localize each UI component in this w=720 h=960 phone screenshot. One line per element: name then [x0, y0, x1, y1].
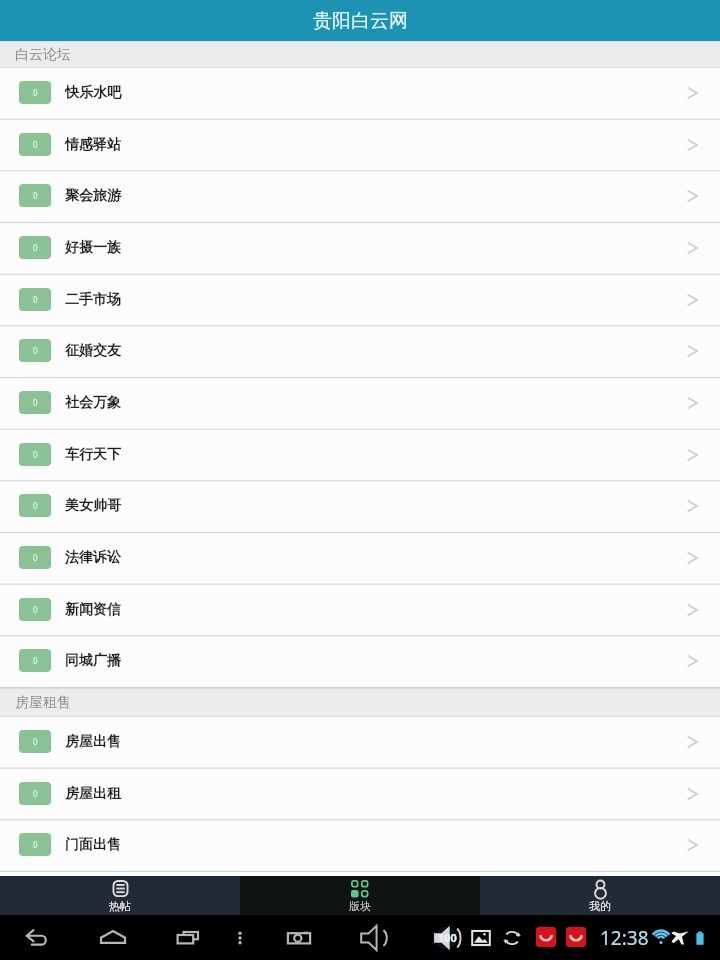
button[interactable]: 0 [0, 769, 720, 821]
other: WiFi [650, 927, 672, 949]
staticText: 0 [33, 839, 38, 850]
button[interactable]: 0 [0, 275, 720, 327]
button[interactable]: 我的 [480, 876, 720, 915]
button[interactable]: 0 [0, 717, 720, 769]
staticText: 新闻资信 [65, 601, 121, 619]
button[interactable]: 0 [0, 585, 720, 637]
button[interactable]: 0 [0, 120, 720, 172]
button[interactable]: 版块 [240, 876, 480, 915]
staticText: 房屋出租 [65, 785, 121, 803]
button[interactable]: 0 [0, 68, 720, 120]
staticText: 0 [33, 655, 38, 666]
button[interactable]: 0 [0, 636, 720, 688]
staticText: 0 [33, 345, 38, 356]
button[interactable]: 0 [0, 820, 720, 872]
other: Airplane mode [670, 928, 690, 948]
staticText: 0 [33, 397, 38, 408]
other: Battery [690, 928, 710, 948]
staticText: 0 [33, 449, 38, 460]
staticText: 0 [33, 139, 38, 150]
staticText: 我的 [589, 899, 611, 913]
staticText: 车行天下 [65, 446, 121, 464]
staticText: 0 [33, 294, 38, 305]
staticText: 美女帅哥 [65, 497, 121, 515]
button[interactable]: 热帖 [0, 876, 240, 915]
other: Volume [358, 922, 390, 954]
button[interactable]: 0 [0, 430, 720, 482]
staticText: 房屋租售 [15, 694, 71, 712]
staticText: 0 [33, 500, 38, 511]
staticText: 门面出售 [65, 836, 121, 854]
staticText: 0 [33, 552, 38, 563]
staticText: 快乐水吧 [65, 84, 121, 102]
staticText: 0 [33, 604, 38, 615]
staticText: 100 [438, 930, 457, 945]
other: Back [24, 924, 52, 952]
staticText: 0 [33, 736, 38, 747]
staticText: 房屋出售 [65, 733, 121, 751]
staticText: 白云论坛 [15, 46, 71, 64]
staticText: 0 [33, 788, 38, 799]
staticText: 法律诉讼 [65, 549, 121, 567]
staticText: 0 [33, 190, 38, 201]
staticText: 二手市场 [65, 291, 121, 309]
staticText: 聚会旅游 [65, 187, 121, 205]
staticText: 社会万象 [65, 394, 121, 412]
other: Screenshot [284, 923, 314, 953]
button[interactable]: 0 [0, 378, 720, 430]
staticText: 同城广播 [65, 652, 121, 670]
other: Sync [501, 927, 523, 949]
staticText: 12:38 [600, 925, 649, 951]
staticText: 版块 [349, 899, 371, 913]
button[interactable]: 0 [0, 481, 720, 533]
staticText: 0 [33, 242, 38, 253]
other: More options [228, 926, 252, 950]
other: Recents [174, 923, 204, 953]
staticText: 热帖 [109, 899, 131, 913]
other: Home [98, 923, 128, 953]
other: Media volume [432, 921, 466, 955]
button[interactable]: 0 [0, 171, 720, 223]
staticText: 征婚交友 [65, 342, 121, 360]
button[interactable]: 0 [0, 223, 720, 275]
button[interactable]: 0 [0, 326, 720, 378]
staticText: 情感驿站 [65, 136, 121, 154]
staticText: 贵阳白云网 [313, 9, 408, 33]
button[interactable]: 0 [0, 533, 720, 585]
staticText: 0 [33, 87, 38, 98]
staticText: 好摄一族 [65, 239, 121, 257]
other: Screenshot saved [470, 927, 492, 949]
